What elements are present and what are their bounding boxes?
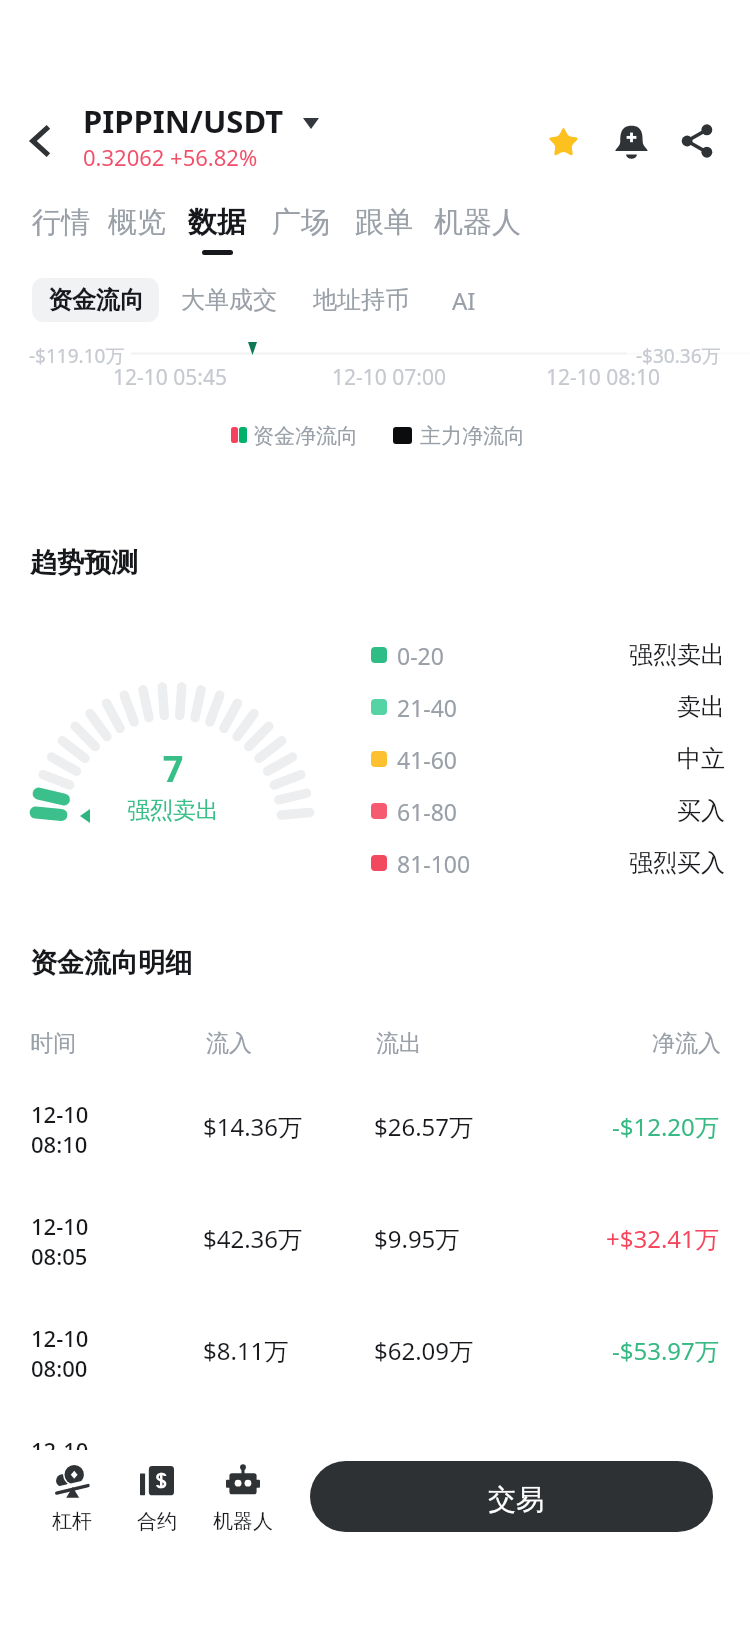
staticText: 08:10: [31, 1129, 88, 1159]
button[interactable]: Back: [7, 108, 73, 174]
staticText: 12-10 07:00: [332, 363, 446, 392]
button[interactable]: 12-10: [0, 1314, 750, 1426]
staticText: -$30.36万: [636, 343, 721, 369]
staticText: 时间: [30, 1029, 76, 1058]
button[interactable]: Price alert: [597, 107, 665, 175]
staticText: 数据: [188, 204, 246, 241]
button[interactable]: 21-40: [371, 681, 725, 733]
staticText: 卖出: [677, 692, 725, 722]
staticText: -$119.10万: [29, 343, 125, 369]
staticText: 12-10: [31, 1323, 89, 1353]
staticText: 合约: [137, 1509, 177, 1534]
staticText: 广场: [272, 204, 330, 241]
staticText: 机器人: [213, 1509, 273, 1534]
button[interactable]: 12-10: [0, 1202, 750, 1314]
staticText: 0-20: [397, 640, 444, 671]
staticText: 41-60: [397, 744, 458, 775]
staticText: 流入: [206, 1029, 252, 1058]
staticText: 12-10 08:10: [546, 363, 660, 392]
button[interactable]: 大单成交: [169, 278, 289, 322]
staticText: 61-80: [397, 796, 458, 827]
button[interactable]: Favorite: [529, 107, 597, 175]
staticText: 趋势预测: [30, 546, 138, 580]
staticText: 资金净流向: [253, 423, 358, 449]
staticText: 强烈买入: [629, 848, 725, 878]
staticText: 0.32062 +56.82%: [83, 142, 258, 172]
staticText: 机器人: [434, 204, 521, 241]
staticText: -$12.20万: [612, 1110, 719, 1143]
staticText: 行情: [32, 204, 90, 241]
staticText: -$53.97万: [612, 1334, 719, 1367]
staticText: 12-10 05:45: [113, 363, 227, 392]
button[interactable]: 12-10: [0, 1090, 750, 1202]
staticText: 地址持币: [313, 285, 409, 315]
staticText: 大单成交: [181, 285, 277, 315]
staticText: 资金流向明细: [30, 946, 192, 980]
staticText: 强烈卖出: [113, 796, 233, 825]
staticText: 08:05: [31, 1241, 88, 1271]
button[interactable]: 行情: [20, 204, 101, 255]
staticText: $14.36万: [203, 1110, 303, 1143]
staticText: 21-40: [397, 692, 458, 723]
button[interactable]: 机器人: [424, 204, 531, 255]
button[interactable]: 资金流向: [32, 278, 159, 322]
button[interactable]: 杠杆: [36, 1464, 108, 1534]
button[interactable]: 广场: [260, 204, 341, 255]
staticText: 流出: [376, 1029, 422, 1058]
staticText: 净流入: [652, 1029, 721, 1058]
button[interactable]: 61-80: [371, 785, 725, 837]
staticText: 7: [113, 744, 233, 793]
staticText: 跟单: [355, 204, 413, 241]
staticText: 交易: [488, 1482, 544, 1517]
staticText: 概览: [108, 204, 166, 241]
staticText: 12-10: [31, 1099, 89, 1129]
button[interactable]: AI: [439, 278, 489, 322]
button[interactable]: Share: [663, 107, 731, 175]
staticText: 中立: [677, 744, 725, 774]
staticText: $9.95万: [374, 1222, 460, 1255]
button[interactable]: 概览: [96, 204, 177, 255]
button[interactable]: 跟单: [343, 204, 424, 255]
staticText: 主力净流向: [420, 423, 525, 449]
staticText: 12-10: [31, 1435, 89, 1450]
button[interactable]: 41-60: [371, 733, 725, 785]
button[interactable]: 机器人: [207, 1464, 279, 1534]
staticText: 81-100: [397, 848, 471, 879]
staticText: 资金流向: [48, 285, 144, 315]
staticText: +$32.41万: [606, 1222, 719, 1255]
staticText: AI: [452, 284, 476, 317]
staticText: 买入: [677, 796, 725, 826]
button[interactable]: 交易: [310, 1461, 713, 1532]
staticText: 杠杆: [52, 1509, 92, 1534]
button[interactable]: 12-10: [0, 1426, 750, 1450]
staticText: 12-10: [31, 1211, 89, 1241]
button[interactable]: 地址持币: [301, 278, 420, 322]
button[interactable]: 81-100: [371, 837, 725, 889]
staticText: 08:00: [31, 1353, 88, 1383]
staticText: $26.57万: [374, 1110, 474, 1143]
staticText: $42.36万: [203, 1222, 303, 1255]
button[interactable]: 数据: [176, 204, 257, 255]
button[interactable]: 合约: [121, 1464, 193, 1534]
staticText: 强烈卖出: [629, 640, 725, 670]
button[interactable]: 0-20: [371, 629, 725, 681]
staticText: $62.09万: [374, 1334, 474, 1367]
staticText: $8.11万: [203, 1334, 289, 1367]
staticText: PIPPIN/USDT: [83, 100, 284, 142]
